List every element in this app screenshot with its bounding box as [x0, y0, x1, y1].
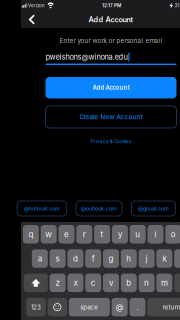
button[interactable]: q	[23, 225, 39, 243]
button[interactable]: j	[139, 249, 155, 268]
staticText: r	[83, 229, 86, 239]
staticText: g	[108, 254, 113, 263]
staticText: x	[73, 278, 77, 288]
button[interactable]: Privacy & Cookies	[81, 135, 141, 148]
button[interactable]: Add Account	[45, 77, 176, 98]
staticText: z	[56, 278, 60, 288]
staticText: s	[56, 254, 60, 263]
button[interactable]: @hotmail.com	[17, 201, 67, 216]
staticText: u	[135, 229, 140, 239]
button[interactable]: y	[112, 225, 128, 243]
staticText: b	[126, 278, 131, 288]
staticText: pwelshons@winona.edu	[45, 53, 127, 62]
button[interactable]: @gmail.com	[131, 201, 175, 216]
staticText: y	[118, 229, 122, 239]
button[interactable]: @	[112, 298, 128, 316]
button[interactable]: m	[156, 274, 172, 292]
button[interactable]: @outlook.com	[76, 201, 122, 216]
button[interactable]: l	[174, 249, 180, 268]
staticText: o	[171, 229, 176, 239]
staticText: c	[91, 278, 96, 288]
staticText: Verizon	[28, 3, 45, 8]
button[interactable]: w	[41, 225, 57, 243]
button[interactable]: n	[139, 274, 155, 292]
staticText: 12:17 PM	[102, 3, 121, 8]
staticText: t	[101, 229, 104, 239]
button[interactable]: f	[85, 249, 101, 268]
staticText: Privacy & Cookies	[91, 139, 131, 144]
button[interactable]: e	[58, 225, 74, 243]
staticText: Add Account	[88, 15, 133, 24]
button[interactable]: return	[147, 298, 180, 316]
button[interactable]: Emoji keyboard	[47, 298, 67, 316]
staticText: space	[80, 303, 98, 311]
button[interactable]: h	[121, 249, 137, 268]
staticText: f	[92, 254, 95, 263]
staticText: @hotmail.com	[24, 205, 60, 212]
staticText: h	[126, 254, 131, 263]
button[interactable]: s	[50, 249, 66, 268]
button[interactable]: u	[130, 225, 146, 243]
staticText: n	[144, 278, 149, 288]
staticText: @outlook.com	[81, 205, 117, 212]
button[interactable]: b	[121, 274, 137, 292]
button[interactable]: z	[50, 274, 66, 292]
button[interactable]: space	[69, 298, 110, 316]
staticText: d	[73, 254, 78, 263]
staticText: 31%	[174, 3, 180, 8]
button[interactable]: t	[94, 225, 110, 243]
button[interactable]: v	[103, 274, 119, 292]
button[interactable]: g	[103, 249, 119, 268]
button[interactable]: i	[147, 225, 163, 243]
button[interactable]: Create New Account	[45, 106, 176, 128]
button[interactable]: 123	[26, 298, 46, 316]
button[interactable]: Back	[21, 11, 44, 28]
staticText: v	[109, 278, 113, 288]
staticText: j	[146, 254, 148, 263]
button[interactable]: o	[165, 225, 180, 243]
staticText: w	[45, 229, 52, 239]
staticText: Create New Account	[79, 113, 142, 121]
staticText: i	[154, 229, 156, 239]
button[interactable]: c	[85, 274, 101, 292]
button[interactable]: a	[32, 249, 48, 268]
button[interactable]: Shift	[24, 274, 48, 292]
staticText: Enter your work or personal email	[59, 37, 162, 45]
staticText: k	[162, 254, 166, 263]
button[interactable]: k	[156, 249, 172, 268]
button[interactable]: .	[129, 298, 145, 316]
button[interactable]: r	[76, 225, 92, 243]
staticText: 123	[31, 303, 41, 311]
staticText: q	[28, 229, 33, 239]
staticText: Add Account	[92, 84, 129, 91]
staticText: @	[116, 302, 124, 312]
staticText: m	[161, 278, 168, 288]
staticText: .	[136, 302, 138, 312]
staticText: a	[38, 254, 42, 263]
button[interactable]: Delete	[174, 274, 180, 292]
staticText: @gmail.com	[138, 205, 169, 212]
button[interactable]: d	[67, 249, 83, 268]
staticText: e	[64, 229, 69, 239]
button[interactable]: x	[67, 274, 83, 292]
staticText: return	[162, 303, 180, 311]
